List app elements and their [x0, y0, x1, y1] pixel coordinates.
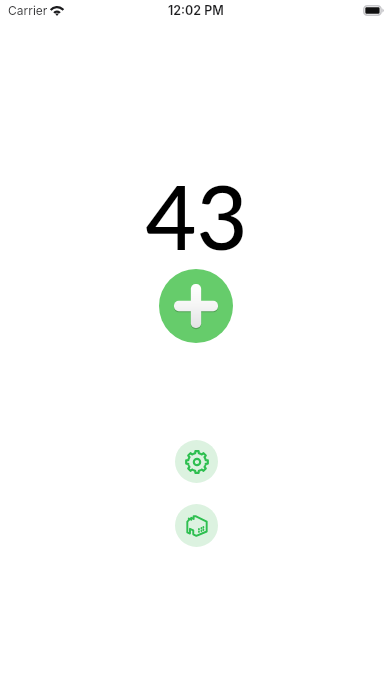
staticText: 12:02 PM [168, 3, 224, 18]
staticText: 43 [145, 163, 248, 269]
button[interactable]: Dice [175, 504, 218, 547]
staticText: Carrier [8, 3, 48, 18]
button[interactable]: Add [159, 269, 233, 343]
button[interactable]: Settings [175, 440, 218, 483]
